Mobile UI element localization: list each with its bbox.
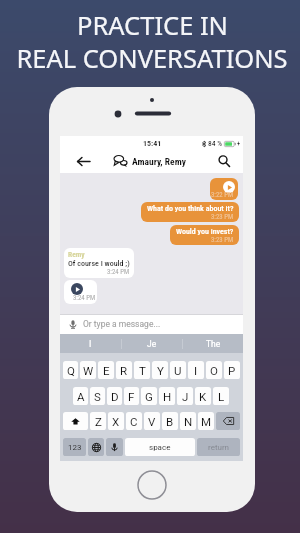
staticText: G — [145, 390, 153, 403]
staticText: 15:41 — [143, 139, 162, 148]
staticText: N — [184, 415, 193, 428]
button[interactable]: C — [126, 412, 142, 430]
staticText: A — [77, 390, 85, 403]
button[interactable]: E — [98, 361, 114, 379]
staticText: 3:23 PM — [211, 213, 234, 221]
button[interactable]: Q — [63, 361, 78, 379]
button[interactable]: R — [116, 361, 132, 379]
staticText: 123 — [68, 443, 82, 452]
staticText: O — [210, 364, 218, 377]
button[interactable]: L — [213, 387, 229, 405]
staticText: S — [94, 390, 101, 403]
button[interactable]: A — [73, 387, 88, 405]
button[interactable]: S — [90, 387, 105, 405]
button[interactable]: H — [159, 387, 175, 405]
staticText: E — [103, 364, 110, 377]
staticText: Z — [95, 415, 102, 428]
button[interactable]: O — [206, 361, 222, 379]
button[interactable]: 123 — [63, 438, 86, 456]
staticText: 3:22 PM — [211, 191, 234, 199]
button[interactable]: J — [177, 387, 193, 405]
button[interactable]: I — [60, 334, 121, 353]
button[interactable]: return — [197, 438, 240, 456]
staticText: L — [218, 390, 225, 403]
button[interactable]: V — [144, 412, 160, 430]
staticText: I — [89, 339, 92, 349]
staticText: J — [182, 390, 189, 403]
button[interactable]: G — [141, 387, 157, 405]
staticText: return — [208, 443, 230, 452]
button[interactable]: W — [80, 361, 96, 379]
button[interactable]: Remy — [64, 248, 134, 278]
staticText: Amaury, Remy — [132, 156, 186, 167]
staticText: W — [83, 364, 94, 377]
staticText: The — [206, 339, 221, 349]
button[interactable]: X — [108, 412, 124, 430]
staticText: H — [163, 390, 172, 403]
staticText: Or type a message... — [83, 319, 161, 329]
button[interactable]: Change keyboard language — [88, 438, 104, 456]
button[interactable]: Shift — [63, 412, 88, 430]
button[interactable]: What do you think about it? — [141, 202, 239, 222]
button[interactable]: D — [107, 387, 122, 405]
button[interactable]: Back — [74, 152, 92, 170]
button[interactable]: Backspace — [216, 412, 240, 430]
button[interactable]: 3:22 PM — [210, 178, 238, 200]
staticText: Y — [157, 364, 164, 377]
button[interactable]: M — [198, 412, 214, 430]
button[interactable]: 3:24 PM — [64, 280, 97, 304]
button[interactable]: I — [188, 361, 204, 379]
staticText: X — [112, 415, 120, 428]
staticText: K — [199, 390, 207, 403]
button[interactable]: B — [162, 412, 178, 430]
staticText: space — [149, 443, 171, 452]
button[interactable]: Would you invest? — [170, 225, 239, 245]
button[interactable]: Search — [215, 152, 233, 170]
staticText: Remy — [68, 250, 85, 259]
staticText: REAL CONVERSATIONS — [16, 41, 288, 76]
button[interactable]: Y — [152, 361, 168, 379]
staticText: F — [128, 390, 135, 403]
button[interactable]: T — [134, 361, 150, 379]
button[interactable]: K — [195, 387, 211, 405]
button[interactable]: Je — [122, 334, 182, 353]
button[interactable]: Voice input — [106, 438, 123, 456]
staticText: D — [111, 390, 119, 403]
button[interactable]: The — [183, 334, 243, 353]
staticText: What do you think about it? — [147, 204, 234, 213]
staticText: 3:24 PM — [107, 268, 130, 276]
staticText: PRACTICE IN — [77, 8, 228, 43]
staticText: B — [166, 415, 174, 428]
staticText: Of course I would ;) — [68, 259, 130, 268]
button[interactable]: P — [224, 361, 240, 379]
staticText: I — [194, 364, 198, 377]
staticText: 3:24 PM — [73, 294, 96, 302]
staticText: Would you invest? — [176, 227, 234, 236]
staticText: T — [139, 364, 146, 377]
staticText: 3:23 PM — [211, 236, 234, 244]
staticText: V — [148, 415, 156, 428]
staticText: P — [228, 364, 236, 377]
staticText: C — [130, 415, 138, 428]
staticText: 84 % — [208, 139, 222, 148]
button[interactable]: U — [170, 361, 186, 379]
staticText: R — [120, 364, 128, 377]
button[interactable]: N — [180, 412, 196, 430]
staticText: M — [201, 415, 212, 428]
button[interactable]: Z — [90, 412, 106, 430]
button[interactable]: F — [124, 387, 139, 405]
staticText: Q — [67, 364, 75, 377]
staticText: U — [174, 364, 182, 377]
button[interactable]: space — [125, 438, 195, 456]
staticText: Je — [147, 339, 157, 349]
